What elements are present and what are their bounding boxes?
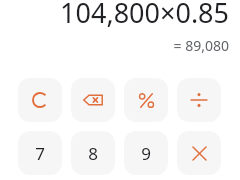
button[interactable]: Clear xyxy=(18,78,62,122)
staticText: = 89,080 xyxy=(0,36,229,55)
staticText: 104,800×0.85 xyxy=(0,0,229,28)
button[interactable]: 9 xyxy=(124,131,168,175)
button[interactable]: 7 xyxy=(18,131,62,175)
staticText: 9 xyxy=(141,142,151,165)
button[interactable]: Divide xyxy=(177,78,221,122)
button[interactable]: Backspace xyxy=(71,78,115,122)
button[interactable]: 8 xyxy=(71,131,115,175)
button[interactable]: Multiply xyxy=(177,131,221,175)
button[interactable]: Percent xyxy=(124,78,168,122)
staticText: 7 xyxy=(35,142,45,165)
staticText: 8 xyxy=(88,142,98,165)
